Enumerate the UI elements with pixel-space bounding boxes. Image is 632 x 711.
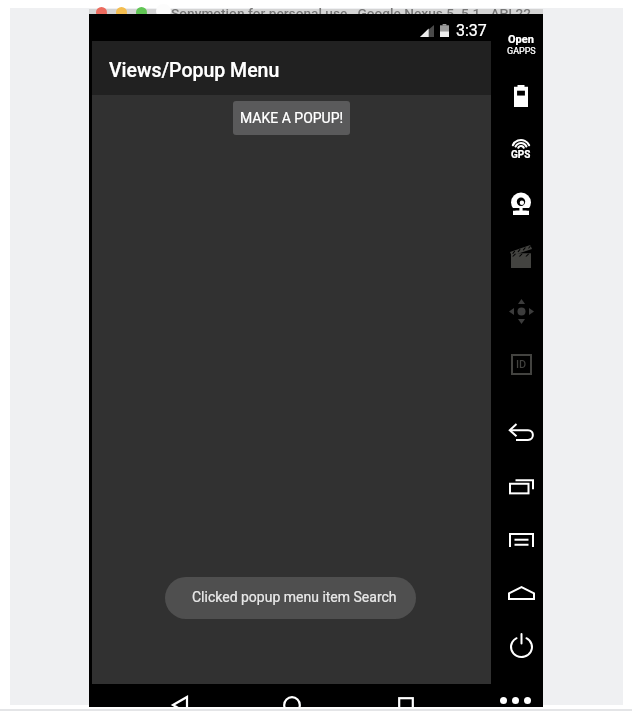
button[interactable]: Record screen bbox=[498, 234, 543, 278]
button[interactable]: Back bbox=[153, 684, 207, 707]
button[interactable]: Menu bbox=[498, 518, 543, 562]
staticText: GAPPS bbox=[507, 46, 536, 57]
button[interactable]: Back bbox=[498, 410, 543, 454]
button[interactable]: Device ID bbox=[498, 342, 543, 386]
button[interactable]: Home bbox=[498, 571, 543, 615]
button[interactable]: Home bbox=[265, 684, 319, 707]
staticText: ID bbox=[516, 358, 527, 371]
button[interactable]: Directional pad bbox=[498, 289, 543, 333]
button[interactable]: More options bbox=[500, 697, 531, 704]
button[interactable]: Overview bbox=[498, 464, 543, 508]
button[interactable]: MAKE A POPUP! bbox=[233, 101, 350, 135]
button[interactable]: Recents bbox=[379, 684, 433, 707]
button[interactable]: Power bbox=[498, 624, 543, 668]
staticText: GPS bbox=[511, 149, 531, 161]
staticText: MAKE A POPUP! bbox=[240, 110, 344, 126]
button[interactable]: Battery bbox=[498, 74, 543, 118]
button[interactable]: GPS bbox=[498, 127, 543, 171]
staticText: 3:37 bbox=[456, 21, 487, 40]
button[interactable]: Camera bbox=[498, 181, 543, 225]
staticText: Open bbox=[508, 33, 534, 46]
staticText: Views/Popup Menu bbox=[109, 59, 280, 82]
staticText: Sonymotion for personal use Google Nexus… bbox=[171, 5, 532, 14]
staticText: Clicked popup menu item Search bbox=[192, 589, 397, 605]
